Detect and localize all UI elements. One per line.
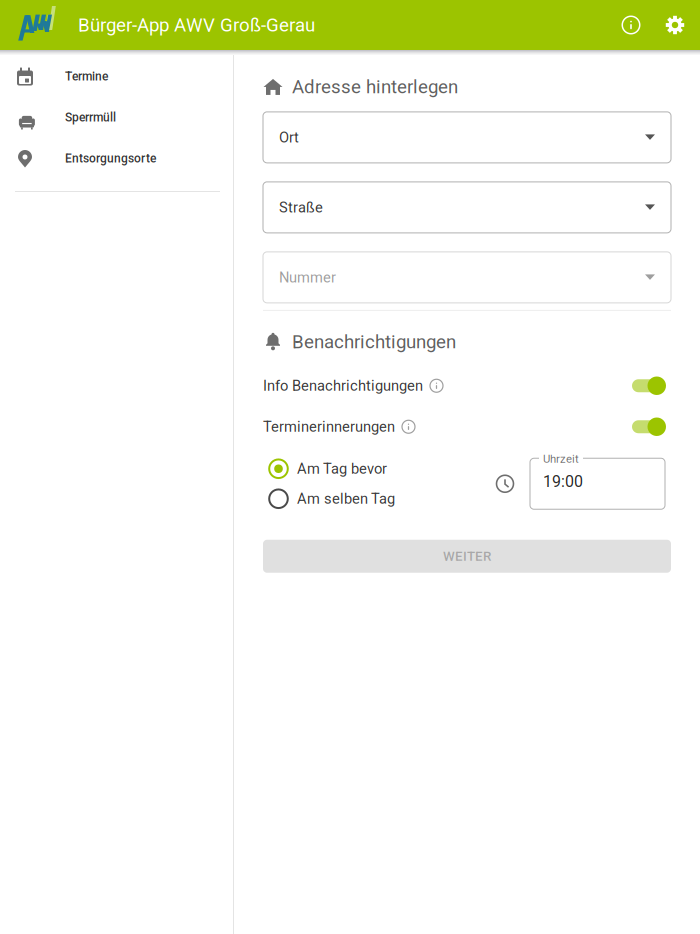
staticText: 19:00: [543, 472, 583, 491]
staticText: Sperrmüll: [65, 110, 116, 125]
staticText: Ort: [279, 129, 299, 146]
button[interactable]: Straße: [263, 182, 671, 233]
staticText: Nummer: [279, 269, 336, 286]
button[interactable]: Sperrmüll: [0, 97, 233, 138]
staticText: Am Tag bevor: [297, 460, 387, 477]
button[interactable]: Information: [609, 1, 653, 49]
staticText: Terminerinnerungen: [263, 418, 395, 435]
button[interactable]: [632, 375, 666, 397]
staticText: WEITER: [443, 548, 491, 564]
staticText: Straße: [279, 199, 323, 216]
button[interactable]: Termine: [0, 56, 233, 97]
staticText: Uhrzeit: [543, 452, 579, 466]
button[interactable]: Nummer: [263, 252, 671, 303]
button[interactable]: WEITER: [263, 540, 671, 573]
staticText: Bürger-App AWV Groß-Gerau: [78, 14, 315, 36]
staticText: Termine: [65, 69, 108, 84]
staticText: Adresse hinterlegen: [292, 76, 458, 98]
button[interactable]: Einstellungen: [653, 1, 697, 49]
button[interactable]: Am selben Tag: [264, 484, 496, 514]
staticText: Entsorgungsorte: [65, 151, 156, 166]
staticText: Benachrichtigungen: [292, 331, 456, 353]
button[interactable]: Ort: [263, 112, 671, 163]
button[interactable]: Entsorgungsorte: [0, 138, 233, 179]
staticText: Am selben Tag: [297, 490, 395, 507]
button[interactable]: [632, 416, 666, 438]
button[interactable]: 19:00: [530, 458, 665, 509]
button[interactable]: Am Tag bevor: [264, 454, 496, 484]
staticText: Info Benachrichtigungen: [263, 377, 423, 394]
